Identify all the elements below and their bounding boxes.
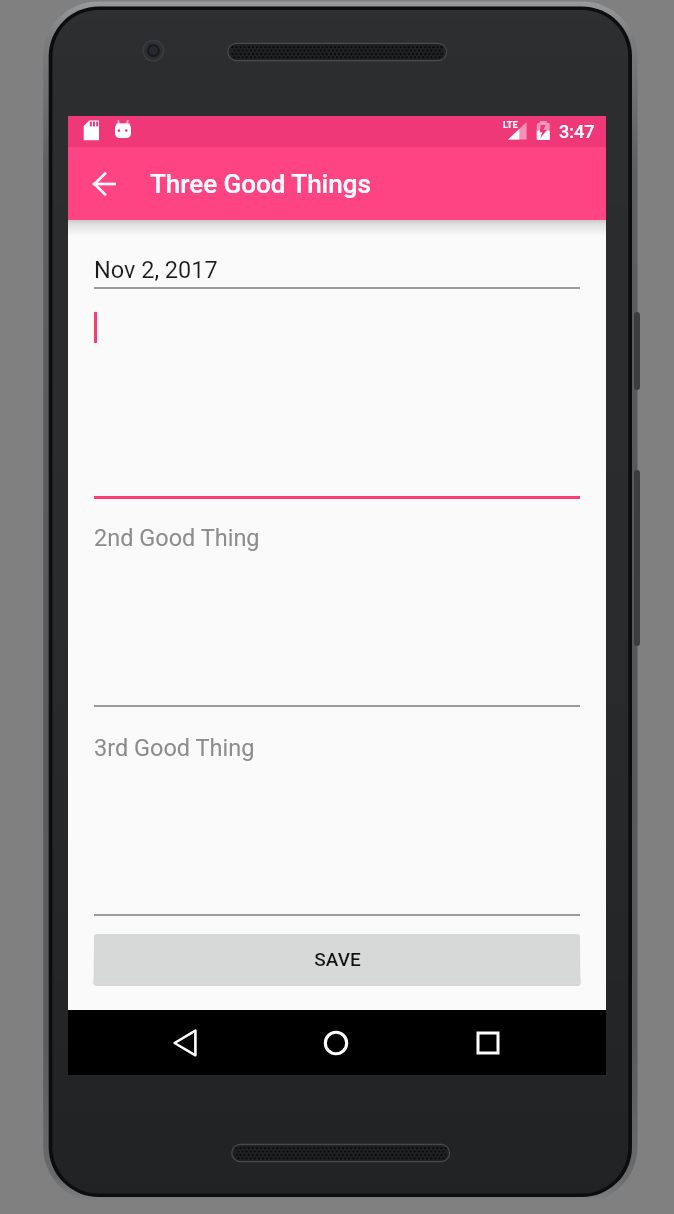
button[interactable]: SAVE — [94, 934, 580, 983]
button[interactable]: Back — [153, 1010, 217, 1075]
staticText: SAVE — [314, 948, 361, 970]
staticText: Three Good Things — [150, 169, 371, 199]
button[interactable]: Recent apps — [456, 1010, 520, 1075]
staticText: 3rd Good Thing — [94, 734, 255, 762]
button[interactable] — [94, 708, 580, 915]
staticText: 3:47 — [559, 121, 595, 142]
button[interactable]: Navigate up — [76, 156, 132, 212]
staticText: 2nd Good Thing — [94, 524, 260, 552]
button[interactable]: Home — [304, 1010, 368, 1075]
button[interactable] — [94, 499, 580, 706]
button[interactable] — [94, 289, 580, 498]
staticText: LTE — [503, 120, 518, 131]
staticText: Nov 2, 2017 — [94, 256, 218, 284]
